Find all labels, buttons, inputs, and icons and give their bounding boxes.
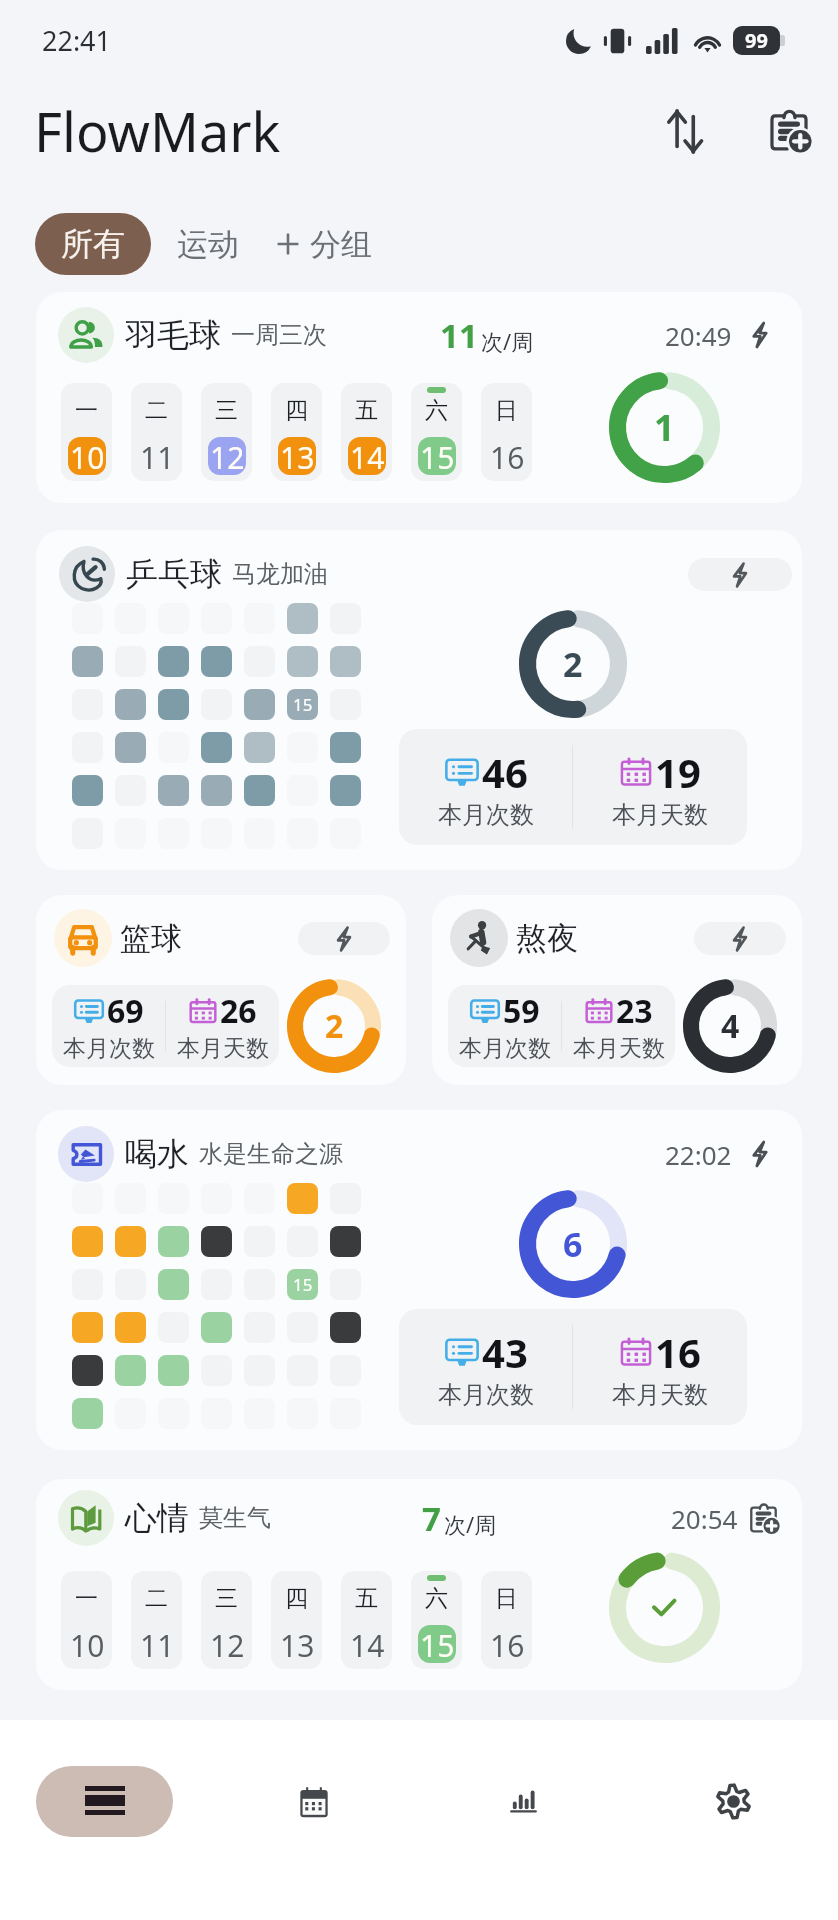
staticText: 心情 bbox=[125, 1498, 189, 1538]
staticText: 本月次数 bbox=[459, 1034, 551, 1063]
button[interactable]: 所有 bbox=[35, 213, 151, 275]
staticText: 本月次数 bbox=[63, 1034, 155, 1063]
staticText: 本月次数 bbox=[438, 800, 534, 830]
staticText: 16 bbox=[490, 1625, 525, 1663]
button[interactable]: 四 bbox=[271, 1571, 322, 1669]
staticText: 15 bbox=[293, 1273, 313, 1296]
staticText: 一 bbox=[75, 1584, 98, 1613]
staticText: FlowMark bbox=[34, 94, 281, 168]
staticText: 本月次数 bbox=[438, 1380, 534, 1410]
button[interactable]: Calendar bbox=[278, 1766, 349, 1837]
button[interactable]: 一 bbox=[61, 1571, 112, 1669]
staticText: 69 bbox=[107, 989, 144, 1033]
staticText: 43 bbox=[482, 1325, 528, 1379]
staticText: 日 bbox=[495, 1584, 518, 1613]
staticText: 本月天数 bbox=[612, 1380, 708, 1410]
staticText: 15 bbox=[420, 437, 455, 475]
button[interactable]: 五 bbox=[341, 1571, 392, 1669]
staticText: 羽毛球 bbox=[125, 315, 221, 355]
staticText: 本月天数 bbox=[612, 800, 708, 830]
button[interactable]: 二 bbox=[131, 383, 182, 481]
staticText: 11 bbox=[140, 437, 175, 475]
button[interactable]: Quick record bbox=[744, 319, 776, 351]
staticText: 59 bbox=[503, 989, 540, 1033]
staticText: 二 bbox=[145, 1584, 168, 1613]
button[interactable]: 二 bbox=[131, 1571, 182, 1669]
staticText: 12 bbox=[210, 437, 245, 475]
staticText: 15 bbox=[293, 693, 313, 716]
button[interactable]: 三 bbox=[201, 1571, 252, 1669]
staticText: 4 bbox=[721, 1004, 740, 1048]
staticText: 11 bbox=[440, 313, 478, 358]
staticText: 三 bbox=[215, 1584, 238, 1613]
staticText: 20:54 bbox=[671, 1501, 738, 1536]
staticText: 熬夜 bbox=[516, 919, 578, 958]
staticText: 19 bbox=[655, 745, 701, 799]
button[interactable]: 三 bbox=[201, 383, 252, 481]
staticText: 99 bbox=[745, 27, 768, 54]
button[interactable]: 篮球 bbox=[36, 895, 406, 1085]
button[interactable]: Quick record bbox=[298, 922, 390, 955]
button[interactable]: Add record bbox=[746, 1501, 780, 1535]
staticText: 13 bbox=[280, 1625, 315, 1663]
staticText: 莫生气 bbox=[199, 1503, 271, 1533]
staticText: 7 bbox=[422, 1496, 441, 1541]
staticText: 10 bbox=[70, 1625, 105, 1663]
staticText: 五 bbox=[355, 396, 378, 425]
staticText: 分组 bbox=[310, 225, 372, 264]
button[interactable]: Quick record bbox=[744, 1138, 776, 1170]
button[interactable]: 六 bbox=[411, 383, 462, 481]
staticText: 22:02 bbox=[665, 1137, 732, 1172]
staticText: 四 bbox=[285, 396, 308, 425]
staticText: 马龙加油 bbox=[232, 559, 328, 589]
button[interactable]: Quick record bbox=[694, 922, 786, 955]
button[interactable]: Add record bbox=[757, 99, 821, 163]
staticText: 6 bbox=[563, 1221, 583, 1267]
button[interactable]: 日 bbox=[481, 1571, 532, 1669]
staticText: 16 bbox=[655, 1325, 701, 1379]
staticText: 六 bbox=[425, 396, 448, 425]
staticText: 15 bbox=[420, 1625, 455, 1663]
button[interactable]: 羽毛球 bbox=[36, 292, 802, 503]
staticText: 11 bbox=[140, 1625, 175, 1663]
button[interactable]: 喝水 bbox=[36, 1110, 802, 1450]
staticText: 乒乓球 bbox=[126, 554, 222, 594]
button[interactable]: Settings bbox=[698, 1766, 769, 1837]
button[interactable]: 熬夜 bbox=[432, 895, 802, 1085]
staticText: 六 bbox=[425, 1584, 448, 1613]
staticText: 次/周 bbox=[481, 326, 534, 356]
button[interactable]: 一 bbox=[61, 383, 112, 481]
button[interactable]: 四 bbox=[271, 383, 322, 481]
staticText: 一周三次 bbox=[231, 320, 327, 350]
staticText: 20:49 bbox=[665, 318, 732, 353]
staticText: 12 bbox=[210, 1625, 245, 1663]
button[interactable]: 日 bbox=[481, 383, 532, 481]
staticText: 22:41 bbox=[42, 22, 112, 59]
staticText: 次/周 bbox=[444, 1509, 497, 1539]
button[interactable]: 乒乓球 bbox=[36, 530, 802, 870]
button[interactable]: 分组 bbox=[265, 213, 382, 275]
button[interactable]: 运动 bbox=[167, 213, 249, 275]
button[interactable]: 心情 bbox=[36, 1479, 802, 1690]
staticText: 本月天数 bbox=[573, 1034, 665, 1063]
staticText: 2 bbox=[325, 1004, 344, 1048]
staticText: 日 bbox=[495, 396, 518, 425]
staticText: 23 bbox=[616, 989, 653, 1033]
button[interactable]: Sort bbox=[653, 99, 717, 163]
button[interactable]: Quick record bbox=[688, 558, 792, 591]
staticText: 一 bbox=[75, 396, 98, 425]
button[interactable]: 五 bbox=[341, 383, 392, 481]
button[interactable]: 六 bbox=[411, 1571, 462, 1669]
staticText: 14 bbox=[350, 437, 385, 475]
staticText: 13 bbox=[280, 437, 315, 475]
button[interactable]: Habits bbox=[36, 1766, 173, 1837]
staticText: 2 bbox=[563, 641, 583, 687]
button[interactable]: Statistics bbox=[488, 1766, 559, 1837]
staticText: 运动 bbox=[177, 225, 239, 264]
staticText: 本月天数 bbox=[177, 1034, 269, 1063]
staticText: 二 bbox=[145, 396, 168, 425]
staticText: 三 bbox=[215, 396, 238, 425]
staticText: 26 bbox=[220, 989, 257, 1033]
staticText: 所有 bbox=[61, 224, 125, 264]
staticText: 喝水 bbox=[125, 1134, 189, 1174]
